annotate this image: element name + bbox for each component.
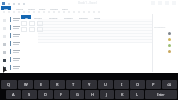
button[interactable]: Option <box>21 21 27 26</box>
staticText: A <box>12 92 15 97</box>
button[interactable]: Panel item <box>166 30 172 36</box>
staticText: More <box>94 16 101 19</box>
button[interactable]: Item <box>0 16 24 24</box>
button[interactable]: Ribbon tool <box>72 10 76 14</box>
button[interactable]: Window control <box>163 0 170 6</box>
button[interactable]: Item <box>0 48 24 56</box>
button[interactable]: Recent <box>34 16 43 19</box>
button[interactable]: Ribbon tool <box>62 10 66 14</box>
button[interactable]: Item <box>0 24 24 32</box>
button[interactable]: More <box>94 16 101 19</box>
button[interactable]: Quick access <box>6 1 11 6</box>
button[interactable]: Ribbon tool <box>2 10 6 14</box>
button[interactable]: Option <box>21 27 27 32</box>
button[interactable]: I <box>114 80 129 89</box>
staticText: U <box>104 82 107 87</box>
button[interactable]: Ribbon tool <box>92 10 96 14</box>
staticText: Folders <box>64 16 73 19</box>
button[interactable]: Home <box>16 7 24 10</box>
button[interactable]: Quick access <box>16 1 21 6</box>
button[interactable]: L <box>130 90 144 99</box>
staticText: Summary <box>154 25 166 28</box>
button[interactable]: Ribbon tool <box>82 10 86 14</box>
button[interactable]: Ribbon tool <box>97 10 101 14</box>
staticText: Home <box>16 7 24 10</box>
button[interactable]: Option <box>37 27 43 32</box>
button[interactable]: O <box>130 80 145 89</box>
staticText: G <box>76 92 79 97</box>
button[interactable]: Ribbon tool <box>87 10 91 14</box>
staticText: E <box>40 82 43 87</box>
button[interactable]: Backspace <box>162 80 177 89</box>
button[interactable]: T <box>66 80 81 89</box>
button[interactable]: Panel item <box>166 36 172 42</box>
button[interactable]: Window control <box>156 0 163 6</box>
other: Item <box>0 64 8 72</box>
button[interactable]: Item <box>0 56 24 64</box>
staticText: D <box>44 92 47 97</box>
button[interactable]: Ribbon tool <box>77 10 81 14</box>
button[interactable]: Ribbon tool <box>37 10 41 14</box>
button[interactable]: G <box>70 90 84 99</box>
button[interactable]: R <box>50 80 65 89</box>
button[interactable]: Draw <box>39 7 46 10</box>
button[interactable]: K <box>115 90 129 99</box>
button[interactable]: Data <box>62 7 68 10</box>
button[interactable]: A <box>6 90 21 99</box>
button[interactable]: Item <box>0 40 24 48</box>
button[interactable]: Ribbon tool <box>42 10 46 14</box>
button[interactable]: U <box>98 80 113 89</box>
button[interactable]: D <box>38 90 53 99</box>
button[interactable]: Ribbon tool <box>27 10 31 14</box>
button[interactable]: Ribbon tool <box>17 10 21 14</box>
button[interactable]: File <box>1 6 11 10</box>
button[interactable]: Ribbon tool <box>22 10 26 14</box>
button[interactable]: Enter <box>145 90 177 99</box>
button[interactable]: Y <box>82 80 97 89</box>
button[interactable]: Shared <box>49 16 58 19</box>
button[interactable]: Panel item <box>166 42 172 48</box>
button[interactable]: Ribbon tool <box>7 10 11 14</box>
button[interactable]: Browse <box>79 16 88 19</box>
staticText: Insert <box>28 7 35 10</box>
button[interactable]: Insert <box>28 7 35 10</box>
staticText: Data <box>62 7 68 10</box>
staticText: Q <box>7 82 11 87</box>
button[interactable]: Ribbon tool <box>32 10 36 14</box>
other: Item <box>0 16 8 24</box>
button[interactable]: Option <box>29 27 35 32</box>
button[interactable]: Q <box>1 80 17 89</box>
button[interactable]: Ribbon tool <box>47 10 51 14</box>
button[interactable]: App menu <box>1 1 6 6</box>
button[interactable]: Item <box>0 64 24 72</box>
button[interactable]: Option <box>29 21 35 26</box>
button[interactable]: F <box>54 90 69 99</box>
button[interactable]: Window control <box>149 0 156 6</box>
button[interactable]: Layout <box>50 7 58 10</box>
button[interactable]: Option <box>37 21 43 26</box>
other: Item <box>0 24 8 32</box>
button[interactable]: Window control <box>170 0 177 6</box>
button[interactable]: Ribbon tool <box>57 10 61 14</box>
button[interactable]: H <box>85 90 99 99</box>
button[interactable]: Ribbon tool <box>52 10 56 14</box>
button[interactable]: Quick access <box>11 1 16 6</box>
button[interactable]: E <box>34 80 49 89</box>
staticText: K <box>121 92 124 97</box>
button[interactable]: Ribbon tool <box>67 10 71 14</box>
button[interactable]: All <box>21 15 31 19</box>
button[interactable]: Quick access <box>21 1 26 6</box>
button[interactable]: J <box>100 90 114 99</box>
staticText: R <box>56 82 59 87</box>
button[interactable]: Item <box>0 32 24 40</box>
button[interactable]: Panel item <box>166 48 172 54</box>
button[interactable]: Ribbon tool <box>12 10 16 14</box>
button[interactable]: W <box>18 80 33 89</box>
staticText: Browse <box>79 16 88 19</box>
button[interactable]: P <box>146 80 161 89</box>
other: Item <box>0 32 8 40</box>
staticText: P <box>152 82 155 87</box>
button[interactable]: S <box>22 90 37 99</box>
button[interactable]: Folders <box>64 16 73 19</box>
staticText: Draw <box>39 7 46 10</box>
